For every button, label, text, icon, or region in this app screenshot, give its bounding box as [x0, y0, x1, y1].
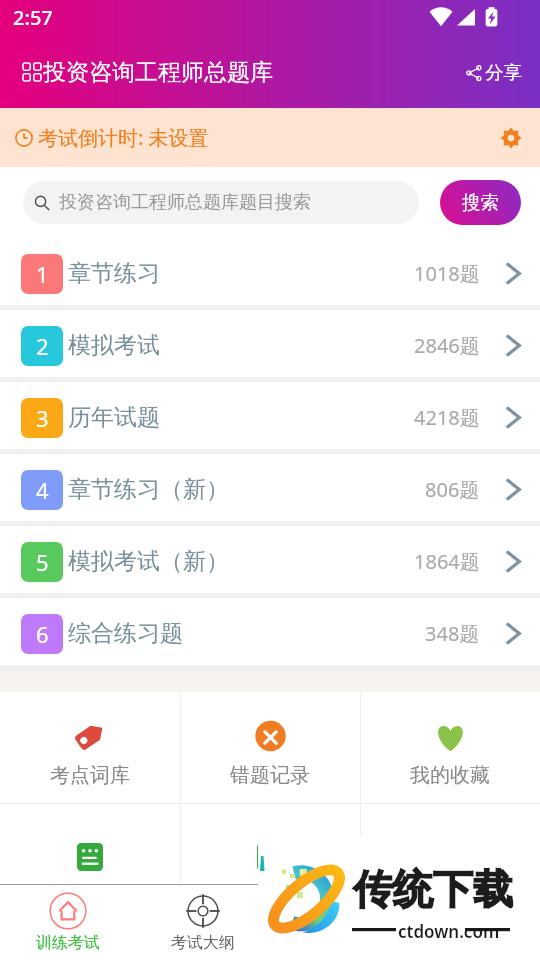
staticText: 4 [36, 475, 49, 505]
button[interactable]: 1 [0, 238, 540, 305]
staticText: 我的 [457, 933, 489, 953]
staticText: 806题 [425, 476, 480, 503]
staticText: 投资咨询工程师总题库 [43, 58, 273, 87]
staticText: 搜索 [462, 191, 499, 214]
button[interactable]: Settings [496, 123, 526, 153]
staticText: 1018题 [414, 260, 480, 287]
staticText: 2 [36, 331, 49, 361]
button[interactable]: 考试大纲 [135, 885, 270, 960]
staticText: ctdown.com [398, 920, 500, 943]
button[interactable]: 分享 [454, 53, 534, 92]
button[interactable]: 6 [0, 598, 540, 665]
staticText: 综合练习题 [68, 619, 183, 648]
button[interactable] [360, 804, 540, 884]
staticText: 模拟考试 [68, 331, 160, 360]
button[interactable]: 投资咨询工程师总题库题目搜索 [23, 181, 419, 224]
staticText: 3 [36, 403, 49, 433]
button[interactable]: 我的收藏 [360, 692, 540, 803]
staticText: 2846题 [414, 332, 480, 359]
button[interactable]: 训练考试 [0, 885, 135, 960]
staticText: 4218题 [414, 404, 480, 431]
staticText: 2:57 [13, 4, 53, 31]
staticText: 传统下载 [353, 864, 513, 914]
button[interactable]: 搜索 [440, 180, 521, 225]
staticText: 投资咨询工程师总题库题目搜索 [59, 191, 311, 214]
staticText: 考试倒计时: 未设置 [38, 124, 209, 151]
staticText: 章节练习（新） [68, 475, 229, 504]
button[interactable]: 5 [0, 526, 540, 593]
staticText: 1 [36, 259, 49, 289]
staticText: 1864题 [414, 548, 480, 575]
button[interactable]: 错题记录 [180, 692, 360, 803]
button[interactable]: 我的 [405, 885, 540, 960]
staticText: 348题 [425, 620, 480, 647]
button[interactable]: 题库 [270, 885, 405, 960]
staticText: 分享 [485, 61, 522, 84]
staticText: 5 [36, 547, 49, 577]
staticText: 6 [36, 619, 49, 649]
staticText: 错题记录 [230, 763, 310, 788]
button[interactable]: 3 [0, 382, 540, 449]
button[interactable] [0, 804, 180, 884]
staticText: 考点词库 [50, 763, 130, 788]
button[interactable]: 2 [0, 310, 540, 377]
button[interactable]: 考点词库 [0, 692, 180, 803]
staticText: 训练考试 [36, 933, 100, 953]
button[interactable]: 考试倒计时: 未设置 [0, 108, 540, 167]
button[interactable]: 4 [0, 454, 540, 521]
staticText: 历年试题 [68, 403, 160, 432]
staticText: 模拟考试（新） [68, 547, 229, 576]
staticText: 章节练习 [68, 259, 160, 288]
button[interactable] [180, 804, 360, 884]
staticText: 考试大纲 [171, 933, 235, 953]
staticText: 我的收藏 [410, 763, 490, 788]
